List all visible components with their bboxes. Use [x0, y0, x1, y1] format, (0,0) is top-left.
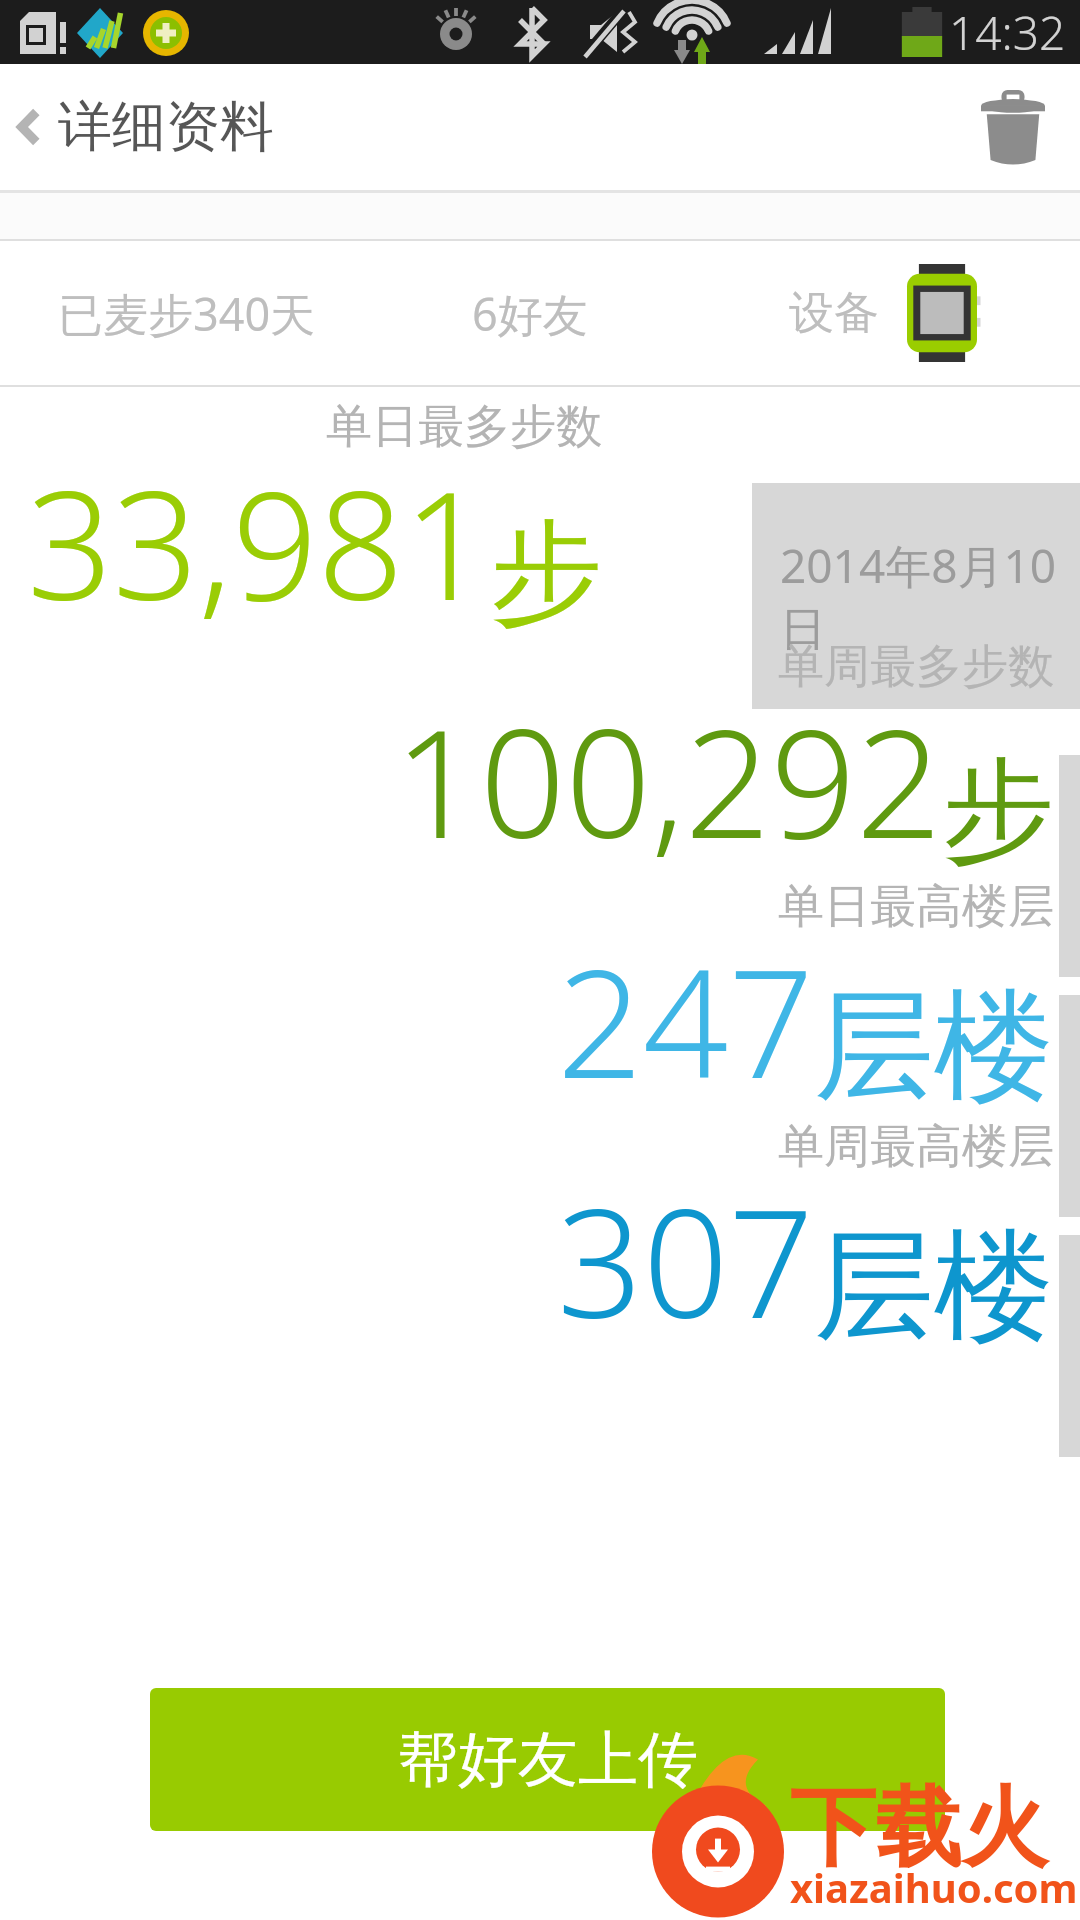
staticText: 详细资料: [58, 93, 274, 161]
staticText: 单日最多步数: [326, 398, 602, 456]
staticText: 33,981: [27, 440, 490, 644]
staticText: 层楼: [814, 1211, 1054, 1362]
staticText: 步: [490, 503, 602, 644]
staticText: xiazaihuo.com: [790, 1860, 1078, 1914]
button[interactable]: 已麦步340天: [0, 239, 374, 387]
staticText: 步: [942, 741, 1054, 882]
button[interactable]: 6好友: [374, 239, 685, 387]
staticText: 单日最高楼层: [778, 878, 1054, 936]
staticText: 已麦步340天: [58, 283, 316, 344]
button[interactable]: 设备: [685, 239, 1080, 387]
button[interactable]: 详细资料: [0, 64, 300, 190]
staticText: 帮好友上传: [398, 1722, 698, 1798]
staticText: 247: [557, 918, 814, 1122]
staticText: 6好友: [472, 283, 588, 344]
staticText: 100,292: [394, 678, 942, 882]
button[interactable]: Delete: [964, 79, 1062, 177]
staticText: 单周最高楼层: [778, 1118, 1054, 1176]
staticText: 下载火: [790, 1774, 1048, 1882]
staticText: 14:32: [949, 1, 1066, 64]
button[interactable]: 帮好友上传: [150, 1688, 945, 1831]
staticText: 单周最多步数: [778, 638, 1054, 696]
staticText: 层楼: [814, 971, 1054, 1122]
staticText: 2014年8月10日: [780, 534, 1080, 659]
staticText: 307: [557, 1158, 814, 1362]
staticText: 设备: [789, 285, 879, 342]
